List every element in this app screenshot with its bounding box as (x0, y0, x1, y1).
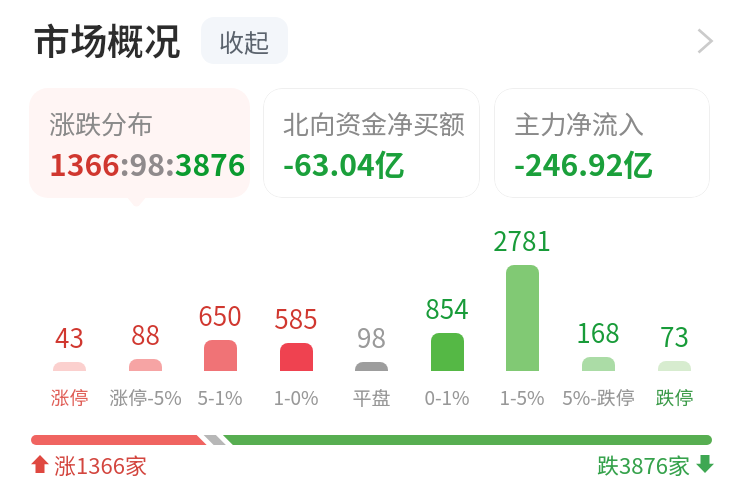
button[interactable]: 涨1366家 (31, 448, 147, 480)
staticText: 收起 (219, 23, 270, 59)
staticText: 涨跌分布 (49, 104, 154, 142)
staticText: 650 (198, 296, 242, 334)
button[interactable]: 收起 (201, 17, 288, 64)
button[interactable]: 涨停-5% (95, 383, 195, 411)
staticText: 0-1% (424, 383, 470, 411)
staticText: 跌停 (655, 383, 694, 411)
button[interactable]: 涨跌分布 (29, 88, 250, 198)
staticText: 585 (274, 299, 318, 337)
staticText: 1-5% (499, 383, 545, 411)
button[interactable]: 平盘 (321, 383, 421, 411)
staticText: -246.92亿 (514, 141, 654, 184)
staticText: 98 (357, 318, 386, 356)
button[interactable]: 北向资金净买额 (263, 88, 480, 198)
staticText: 涨1366家 (54, 448, 147, 480)
button[interactable]: 查看更多 (684, 20, 726, 62)
staticText: -63.04亿 (283, 141, 405, 184)
staticText: 73 (660, 317, 689, 355)
staticText: 5%-跌停 (562, 383, 635, 411)
button[interactable]: 1-5% (472, 383, 572, 411)
staticText: 854 (425, 289, 469, 327)
staticText: 平盘 (352, 383, 391, 411)
button[interactable]: 5%-跌停 (548, 383, 648, 411)
staticText: 2781 (493, 221, 551, 259)
staticText: 168 (576, 313, 620, 351)
staticText: 主力净流入 (514, 104, 645, 142)
staticText: 5-1% (197, 383, 243, 411)
staticText: 1-0% (273, 383, 319, 411)
button[interactable]: 跌停 (624, 383, 724, 411)
staticText: 涨停 (50, 383, 89, 411)
button[interactable]: 1-0% (246, 383, 346, 411)
button[interactable]: 主力净流入 (494, 88, 710, 198)
staticText: 市场概况 (33, 12, 181, 66)
staticText: 北向资金净买额 (283, 104, 466, 142)
button[interactable]: 5-1% (170, 383, 270, 411)
staticText: 跌3876家 (597, 448, 690, 480)
staticText: 43 (55, 318, 84, 356)
button[interactable]: 0-1% (397, 383, 497, 411)
button[interactable]: 跌3876家 (597, 448, 714, 480)
staticText: 涨停-5% (109, 383, 182, 411)
staticText: 88 (131, 315, 160, 353)
staticText: 1366:98:3876 (49, 141, 246, 184)
button[interactable]: 涨停 (19, 383, 119, 411)
